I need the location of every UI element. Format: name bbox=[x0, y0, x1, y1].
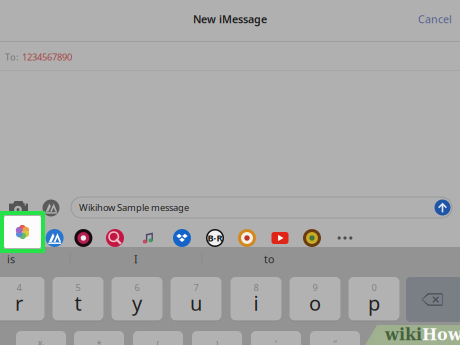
staticText: B·R bbox=[207, 232, 222, 244]
staticText: 5 bbox=[75, 281, 80, 294]
button[interactable]: Music bbox=[133, 223, 163, 253]
button[interactable]: 4 bbox=[0, 277, 44, 322]
staticText: To: bbox=[5, 51, 19, 63]
button[interactable]: More apps bbox=[330, 223, 360, 253]
staticText: ’ bbox=[275, 338, 277, 345]
staticText: i bbox=[253, 290, 258, 316]
staticText: Cancel bbox=[418, 12, 452, 26]
button[interactable]: Send bbox=[434, 199, 450, 215]
staticText: 1234567890 bbox=[22, 51, 72, 63]
button[interactable]: * bbox=[74, 331, 124, 345]
button[interactable]: 7 bbox=[170, 277, 221, 322]
staticText: How bbox=[422, 325, 460, 344]
staticText: * bbox=[96, 338, 101, 345]
button[interactable]: YouTube bbox=[265, 223, 295, 253]
button[interactable]: Baskin Robbins bbox=[200, 223, 230, 253]
staticText: 0 bbox=[371, 281, 376, 294]
staticText: to bbox=[264, 252, 274, 266]
button[interactable]: ( bbox=[133, 331, 183, 345]
button[interactable]: Photos bbox=[3, 223, 33, 253]
button[interactable]: Image search bbox=[100, 223, 130, 253]
button[interactable]: Take photo bbox=[5, 197, 31, 219]
button[interactable] bbox=[375, 331, 437, 345]
staticText: is bbox=[7, 252, 15, 266]
staticText: ” bbox=[333, 338, 336, 345]
button[interactable]: 9 bbox=[289, 277, 340, 322]
staticText: u bbox=[190, 290, 202, 316]
staticText: New iMessage bbox=[193, 12, 267, 26]
button[interactable]: Sticker pack bbox=[232, 223, 262, 253]
staticText: Wikihow Sample message bbox=[79, 201, 189, 214]
button[interactable]: 5 bbox=[52, 277, 103, 322]
button[interactable]: Stickers bbox=[297, 223, 327, 253]
staticText: × bbox=[431, 289, 439, 309]
button[interactable]: Dropbox bbox=[167, 223, 197, 253]
staticText: p bbox=[368, 290, 380, 316]
staticText: 9 bbox=[312, 281, 317, 294]
button[interactable]: ) bbox=[192, 331, 242, 345]
staticText: ( bbox=[156, 338, 159, 345]
button[interactable]: ” bbox=[310, 331, 360, 345]
button[interactable]: Open iMessage apps bbox=[40, 197, 62, 219]
button[interactable]: & bbox=[16, 331, 66, 345]
staticText: r bbox=[15, 290, 23, 316]
button[interactable]: 6 bbox=[111, 277, 162, 322]
button[interactable]: Music sticker bbox=[68, 223, 98, 253]
staticText: 6 bbox=[134, 281, 139, 294]
staticText: I bbox=[134, 252, 138, 266]
button[interactable]: 0 bbox=[348, 277, 399, 322]
staticText: ) bbox=[215, 338, 218, 345]
staticText: o bbox=[309, 290, 321, 316]
staticText: & bbox=[37, 338, 44, 345]
button[interactable]: Delete bbox=[406, 277, 460, 322]
staticText: t bbox=[74, 290, 81, 316]
button[interactable]: Cancel bbox=[410, 8, 460, 30]
staticText: 7 bbox=[193, 281, 198, 294]
staticText: y bbox=[132, 290, 142, 316]
staticText: 8 bbox=[253, 281, 258, 294]
button[interactable]: App Store bbox=[40, 223, 70, 253]
button[interactable]: ’ bbox=[251, 331, 301, 345]
staticText: 4 bbox=[16, 281, 21, 294]
staticText: wiki bbox=[385, 325, 422, 344]
button[interactable]: 8 bbox=[230, 277, 281, 322]
